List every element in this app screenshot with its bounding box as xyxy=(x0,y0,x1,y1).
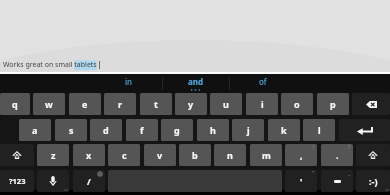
button[interactable]: o xyxy=(281,93,313,115)
staticText: r xyxy=(118,98,123,110)
button[interactable]: Shift xyxy=(0,144,34,166)
staticText: . xyxy=(336,149,339,161)
button[interactable]: d xyxy=(90,119,122,141)
button[interactable]: and xyxy=(162,74,229,93)
staticText: in xyxy=(125,76,133,87)
staticText: l xyxy=(318,124,321,136)
staticText: n xyxy=(227,149,233,161)
button[interactable]: Backspace xyxy=(352,93,390,115)
staticText: ? xyxy=(348,144,351,151)
button[interactable]: Voice input xyxy=(37,170,69,192)
staticText: d xyxy=(103,124,109,136)
staticText: h xyxy=(210,124,216,136)
button[interactable]: in xyxy=(95,74,162,93)
staticText: w xyxy=(45,98,53,110)
staticText: f xyxy=(140,124,144,136)
button[interactable]: Slash xyxy=(73,170,105,192)
button[interactable]: ' xyxy=(285,170,317,192)
button[interactable]: h xyxy=(197,119,229,141)
button[interactable]: t xyxy=(140,93,172,115)
staticText: c xyxy=(122,149,127,161)
button[interactable]: c xyxy=(108,144,140,166)
button[interactable]: r xyxy=(104,93,136,115)
staticText: _ xyxy=(348,170,351,177)
staticText: j xyxy=(247,124,250,136)
staticText: i xyxy=(261,98,264,110)
button[interactable]: of xyxy=(229,74,296,93)
staticText: q xyxy=(12,98,18,110)
staticText: " xyxy=(312,170,315,177)
staticText: k xyxy=(281,124,287,136)
staticText: ?123 xyxy=(9,176,26,186)
staticText: b xyxy=(192,149,198,161)
staticText: o xyxy=(294,98,300,110)
staticText: , xyxy=(300,149,303,161)
staticText: :-) xyxy=(369,175,378,187)
staticText: a xyxy=(32,124,38,136)
button[interactable]: v xyxy=(144,144,176,166)
staticText: y xyxy=(188,98,194,110)
staticText: and xyxy=(188,76,204,87)
button[interactable]: a xyxy=(19,119,51,141)
staticText: u xyxy=(223,98,229,110)
staticText: ' xyxy=(300,175,303,187)
staticText: Works great on small tablets xyxy=(3,60,97,70)
staticText: / xyxy=(87,175,91,187)
button[interactable]: y xyxy=(175,93,207,115)
button[interactable]: u xyxy=(210,93,242,115)
button[interactable]: b xyxy=(179,144,211,166)
button[interactable]: , xyxy=(285,144,317,166)
button[interactable]: Hyphen xyxy=(321,170,353,192)
button[interactable]: Enter xyxy=(339,119,390,141)
button[interactable]: e xyxy=(69,93,101,115)
button[interactable]: q xyxy=(0,93,30,115)
button[interactable]: s xyxy=(55,119,87,141)
button[interactable]: x xyxy=(73,144,105,166)
button[interactable]: Emoji xyxy=(356,170,390,192)
button[interactable]: g xyxy=(161,119,193,141)
button[interactable]: l xyxy=(303,119,335,141)
button[interactable]: n xyxy=(214,144,246,166)
staticText: t xyxy=(154,98,158,110)
button[interactable]: ?123 xyxy=(0,170,34,192)
button[interactable]: k xyxy=(268,119,300,141)
button[interactable]: . xyxy=(321,144,353,166)
staticText: s xyxy=(69,124,74,136)
staticText: x xyxy=(86,149,92,161)
button[interactable]: i xyxy=(246,93,278,115)
button[interactable]: f xyxy=(126,119,158,141)
staticText: e xyxy=(82,98,88,110)
button[interactable]: p xyxy=(317,93,349,115)
button[interactable]: z xyxy=(37,144,69,166)
staticText: g xyxy=(174,124,180,136)
staticText: v xyxy=(157,149,163,161)
staticText: of xyxy=(259,76,267,87)
button[interactable]: m xyxy=(250,144,282,166)
staticText: p xyxy=(330,98,336,110)
button[interactable]: w xyxy=(33,93,65,115)
button[interactable]: Shift xyxy=(356,144,390,166)
button[interactable]: j xyxy=(232,119,264,141)
staticText: z xyxy=(51,149,56,161)
staticText: ! xyxy=(313,144,315,151)
staticText: m xyxy=(262,149,271,161)
